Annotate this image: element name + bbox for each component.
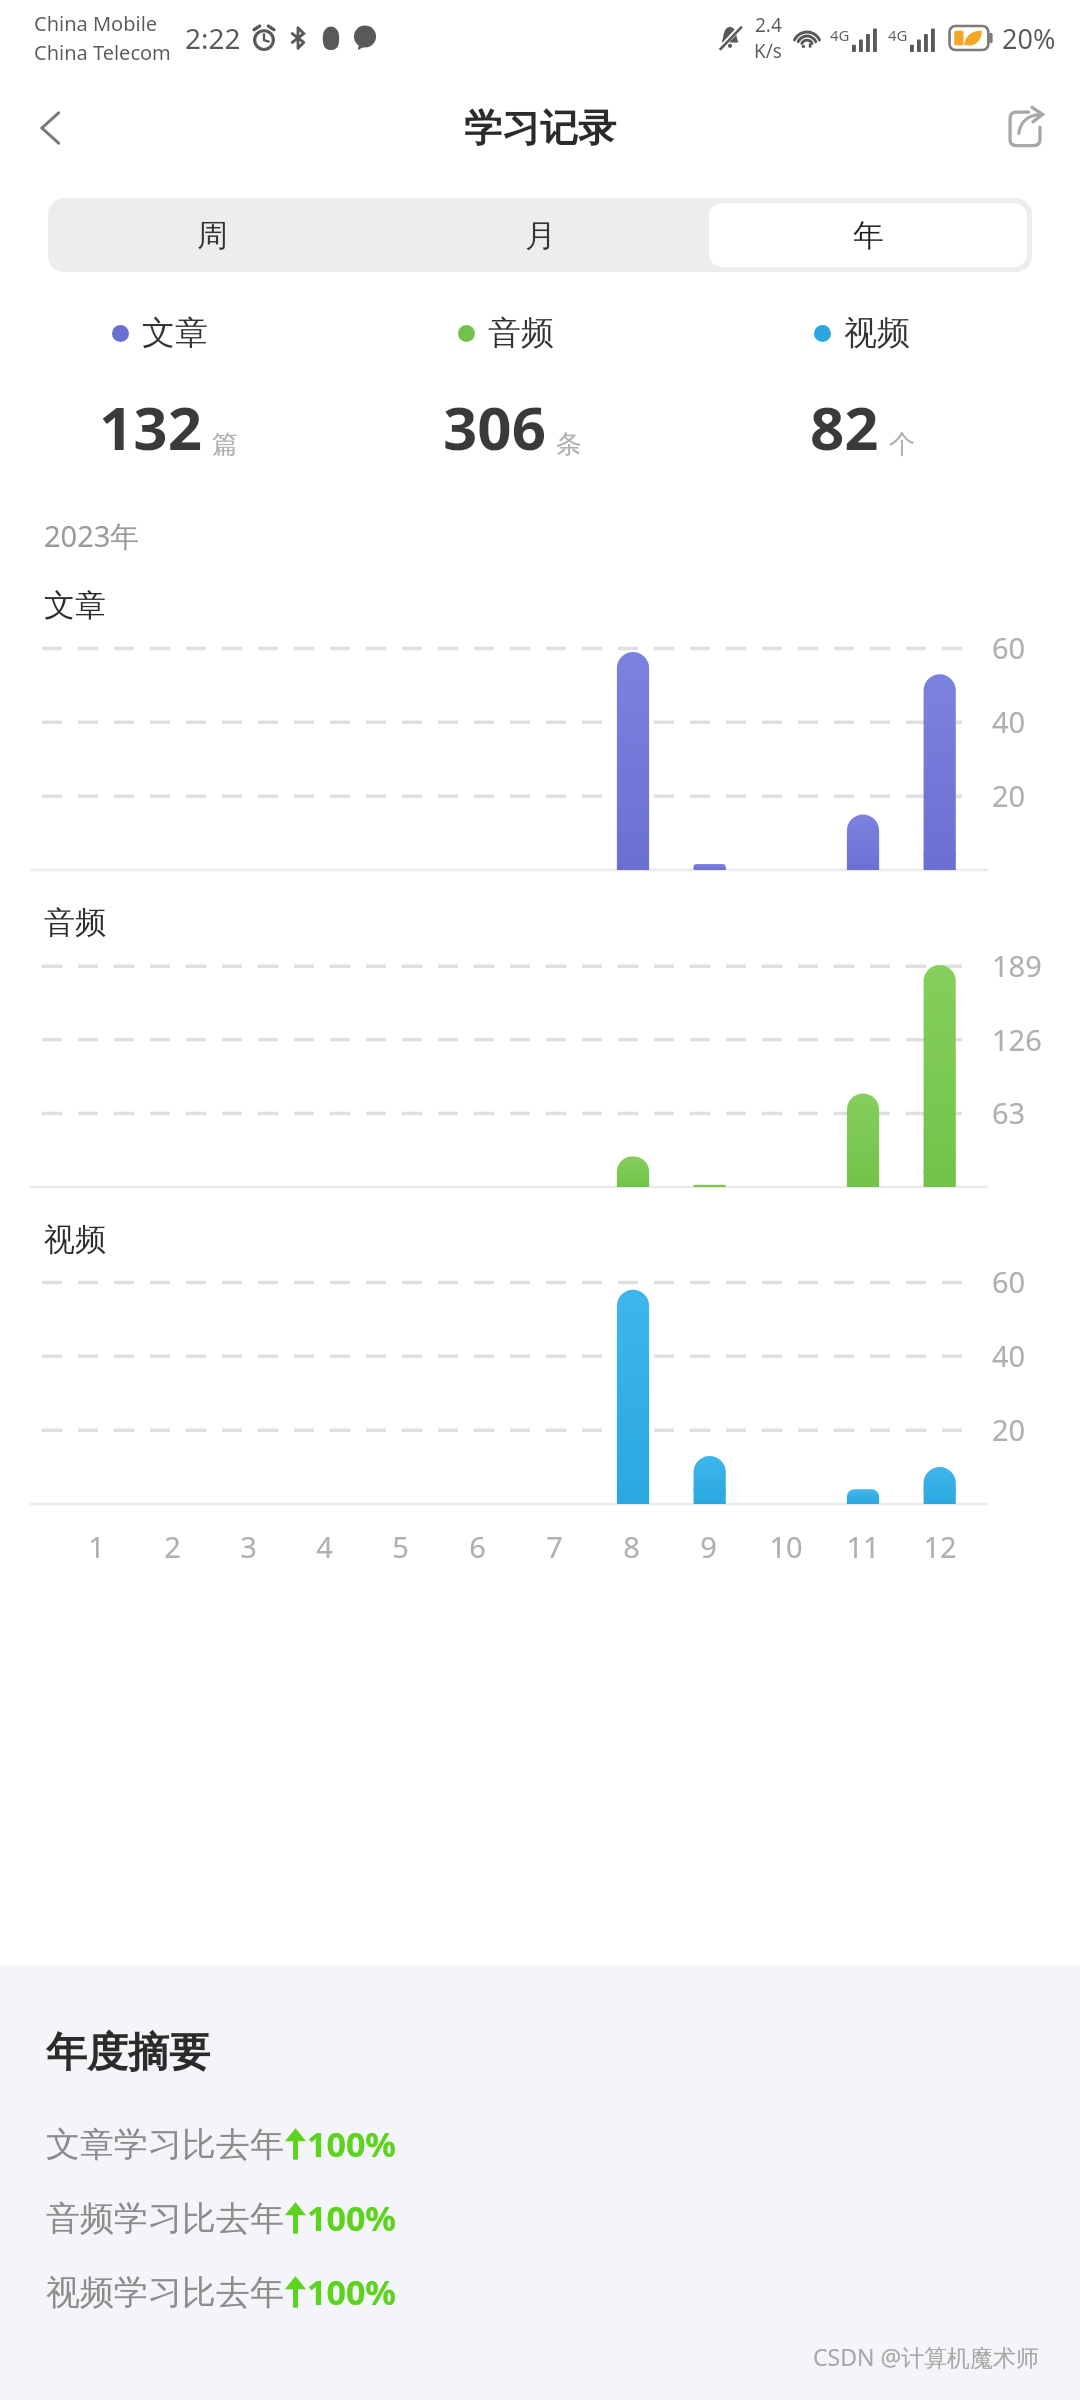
staticText: 4 [316, 1527, 333, 1566]
staticText: China Mobile [34, 10, 158, 37]
staticText: 年度摘要 [46, 2027, 210, 2079]
staticText: 9 [700, 1527, 717, 1566]
staticText: 条 [556, 428, 582, 461]
staticText: 132 [99, 386, 202, 468]
staticText: 文章学习比去年 [46, 2123, 284, 2166]
staticText: 82 [810, 386, 879, 468]
staticText: 8 [623, 1527, 640, 1566]
staticText: 6 [469, 1527, 486, 1566]
staticText: 4G [888, 25, 908, 45]
staticText: China Telecom [34, 39, 171, 66]
staticText: 10 [769, 1527, 803, 1566]
staticText: 100% [307, 2269, 397, 2315]
staticText: 年 [853, 216, 884, 255]
staticText: 306 [443, 386, 546, 468]
button[interactable]: 音频 [376, 312, 713, 468]
staticText: 文章 [142, 312, 208, 354]
staticText: 5 [392, 1527, 409, 1566]
staticText: 音频学习比去年 [46, 2197, 284, 2240]
staticText: 文章 [44, 586, 106, 625]
staticText: 视频 [844, 312, 910, 354]
staticText: 4G [830, 25, 850, 45]
button[interactable]: 音频学习比去年 [46, 2195, 397, 2241]
staticText: 音频 [44, 903, 106, 942]
button[interactable]: 周 [53, 203, 371, 267]
button[interactable]: Share [986, 89, 1064, 167]
staticText: 60 [992, 1262, 1026, 1301]
staticText: 1 [88, 1527, 105, 1566]
staticText: 189 [992, 946, 1042, 985]
staticText: 20 [992, 1410, 1026, 1449]
staticText: CSDN @计算机魔术师 [813, 2341, 1040, 2372]
button[interactable]: 视频 [713, 312, 1050, 468]
button[interactable]: 文章 [40, 312, 376, 468]
staticText: 3 [240, 1527, 257, 1566]
staticText: 月 [525, 216, 556, 255]
staticText: 视频 [44, 1220, 106, 1259]
button[interactable]: 文章学习比去年 [46, 2121, 397, 2167]
staticText: 20 [992, 776, 1026, 815]
staticText: 学习记录 [464, 104, 616, 152]
staticText: 63 [992, 1093, 1026, 1132]
staticText: 周 [197, 216, 228, 255]
staticText: 20% [1002, 20, 1056, 57]
button[interactable]: 年 [709, 203, 1027, 267]
button[interactable]: Back [12, 89, 90, 167]
staticText: 40 [992, 702, 1026, 741]
staticText: 篇 [212, 428, 238, 461]
staticText: 100% [307, 2195, 397, 2241]
staticText: 2.4 [755, 12, 782, 38]
staticText: 126 [992, 1020, 1042, 1059]
staticText: 音频 [488, 312, 554, 354]
staticText: 60 [992, 628, 1026, 667]
staticText: 2023年 [44, 516, 140, 556]
button[interactable]: 月 [381, 203, 699, 267]
staticText: 12 [923, 1527, 957, 1566]
staticText: K/s [754, 38, 782, 64]
staticText: 视频学习比去年 [46, 2271, 284, 2314]
staticText: 40 [992, 1336, 1026, 1375]
button[interactable]: 视频学习比去年 [46, 2269, 397, 2315]
staticText: 2:22 [185, 19, 241, 57]
staticText: 11 [846, 1527, 880, 1566]
staticText: 个 [889, 428, 915, 461]
staticText: 7 [546, 1527, 563, 1566]
staticText: 100% [307, 2121, 397, 2167]
staticText: 2 [164, 1527, 181, 1566]
